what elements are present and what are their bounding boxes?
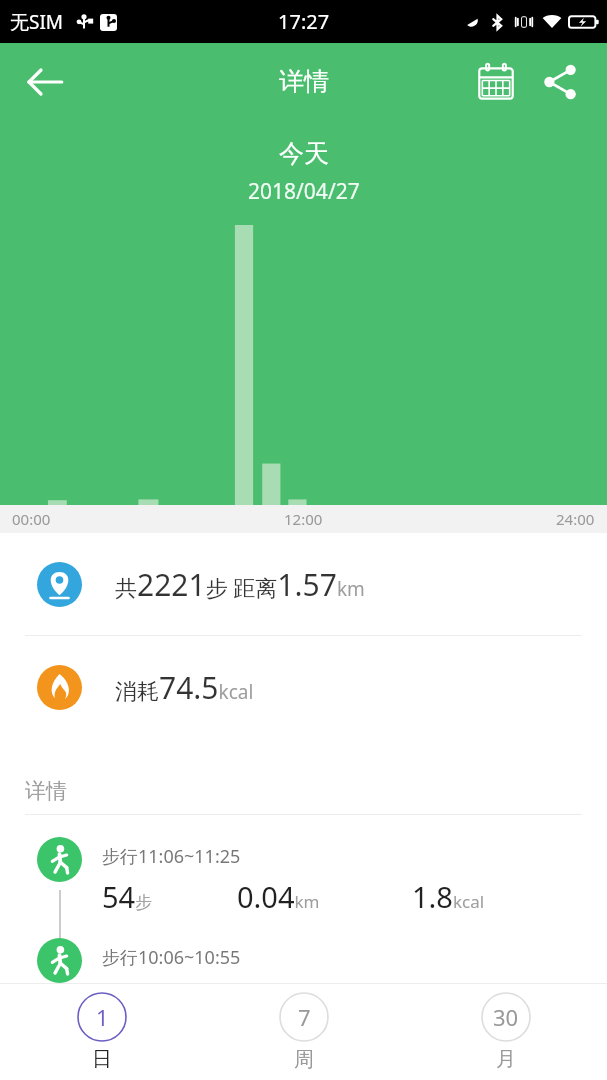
staticText: 1.8kcal bbox=[412, 877, 485, 916]
staticText: 日 bbox=[92, 1047, 112, 1072]
button[interactable]: 共2221步 距离1.57km bbox=[0, 533, 607, 635]
staticText: 消耗74.5kcal bbox=[115, 667, 254, 708]
staticText: 周 bbox=[294, 1047, 314, 1072]
staticText: 12:00 bbox=[284, 509, 323, 529]
button[interactable]: Back bbox=[14, 51, 76, 113]
button[interactable]: 步行10:06~10:55 bbox=[0, 938, 607, 983]
staticText: 30 bbox=[493, 1002, 519, 1032]
button[interactable]: 7 bbox=[203, 984, 405, 1080]
staticText: 0.04km bbox=[237, 877, 320, 916]
staticText: 详情 bbox=[25, 778, 67, 804]
staticText: 2018/04/27 bbox=[248, 177, 360, 206]
button[interactable]: 30 bbox=[405, 984, 607, 1080]
staticText: 今天 bbox=[279, 138, 329, 169]
staticText: 24:00 bbox=[556, 509, 595, 529]
button[interactable]: 消耗74.5kcal bbox=[0, 636, 607, 738]
button[interactable]: Calendar bbox=[467, 53, 525, 111]
staticText: 17:27 bbox=[278, 8, 330, 35]
staticText: 详情 bbox=[279, 66, 329, 97]
staticText: 00:00 bbox=[12, 509, 51, 529]
staticText: 无SIM bbox=[10, 9, 64, 35]
button[interactable]: 1 bbox=[0, 984, 203, 1080]
staticText: 步行11:06~11:25 bbox=[102, 844, 241, 869]
staticText: 7 bbox=[298, 1002, 311, 1032]
button[interactable]: Share bbox=[531, 53, 589, 111]
staticText: 月 bbox=[496, 1047, 516, 1072]
staticText: 步行10:06~10:55 bbox=[102, 945, 241, 970]
staticText: 54步 bbox=[102, 877, 153, 916]
button[interactable]: 步行11:06~11:25 bbox=[0, 837, 607, 916]
staticText: 1 bbox=[96, 1002, 109, 1032]
staticText: 共2221步 距离1.57km bbox=[115, 564, 365, 605]
